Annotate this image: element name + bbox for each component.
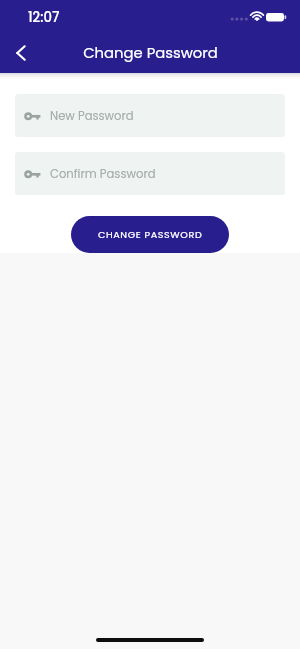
staticText: Confirm Password	[50, 166, 156, 182]
button[interactable]: Back	[2, 33, 40, 71]
staticText: CHANGE PASSWORD	[98, 228, 203, 241]
button[interactable]: Confirm Password	[15, 152, 285, 195]
staticText: New Password	[50, 108, 134, 124]
staticText: Change Password	[83, 42, 218, 63]
button[interactable]: New Password	[15, 94, 285, 137]
staticText: 12:07	[28, 8, 60, 26]
button[interactable]: CHANGE PASSWORD	[71, 216, 229, 253]
